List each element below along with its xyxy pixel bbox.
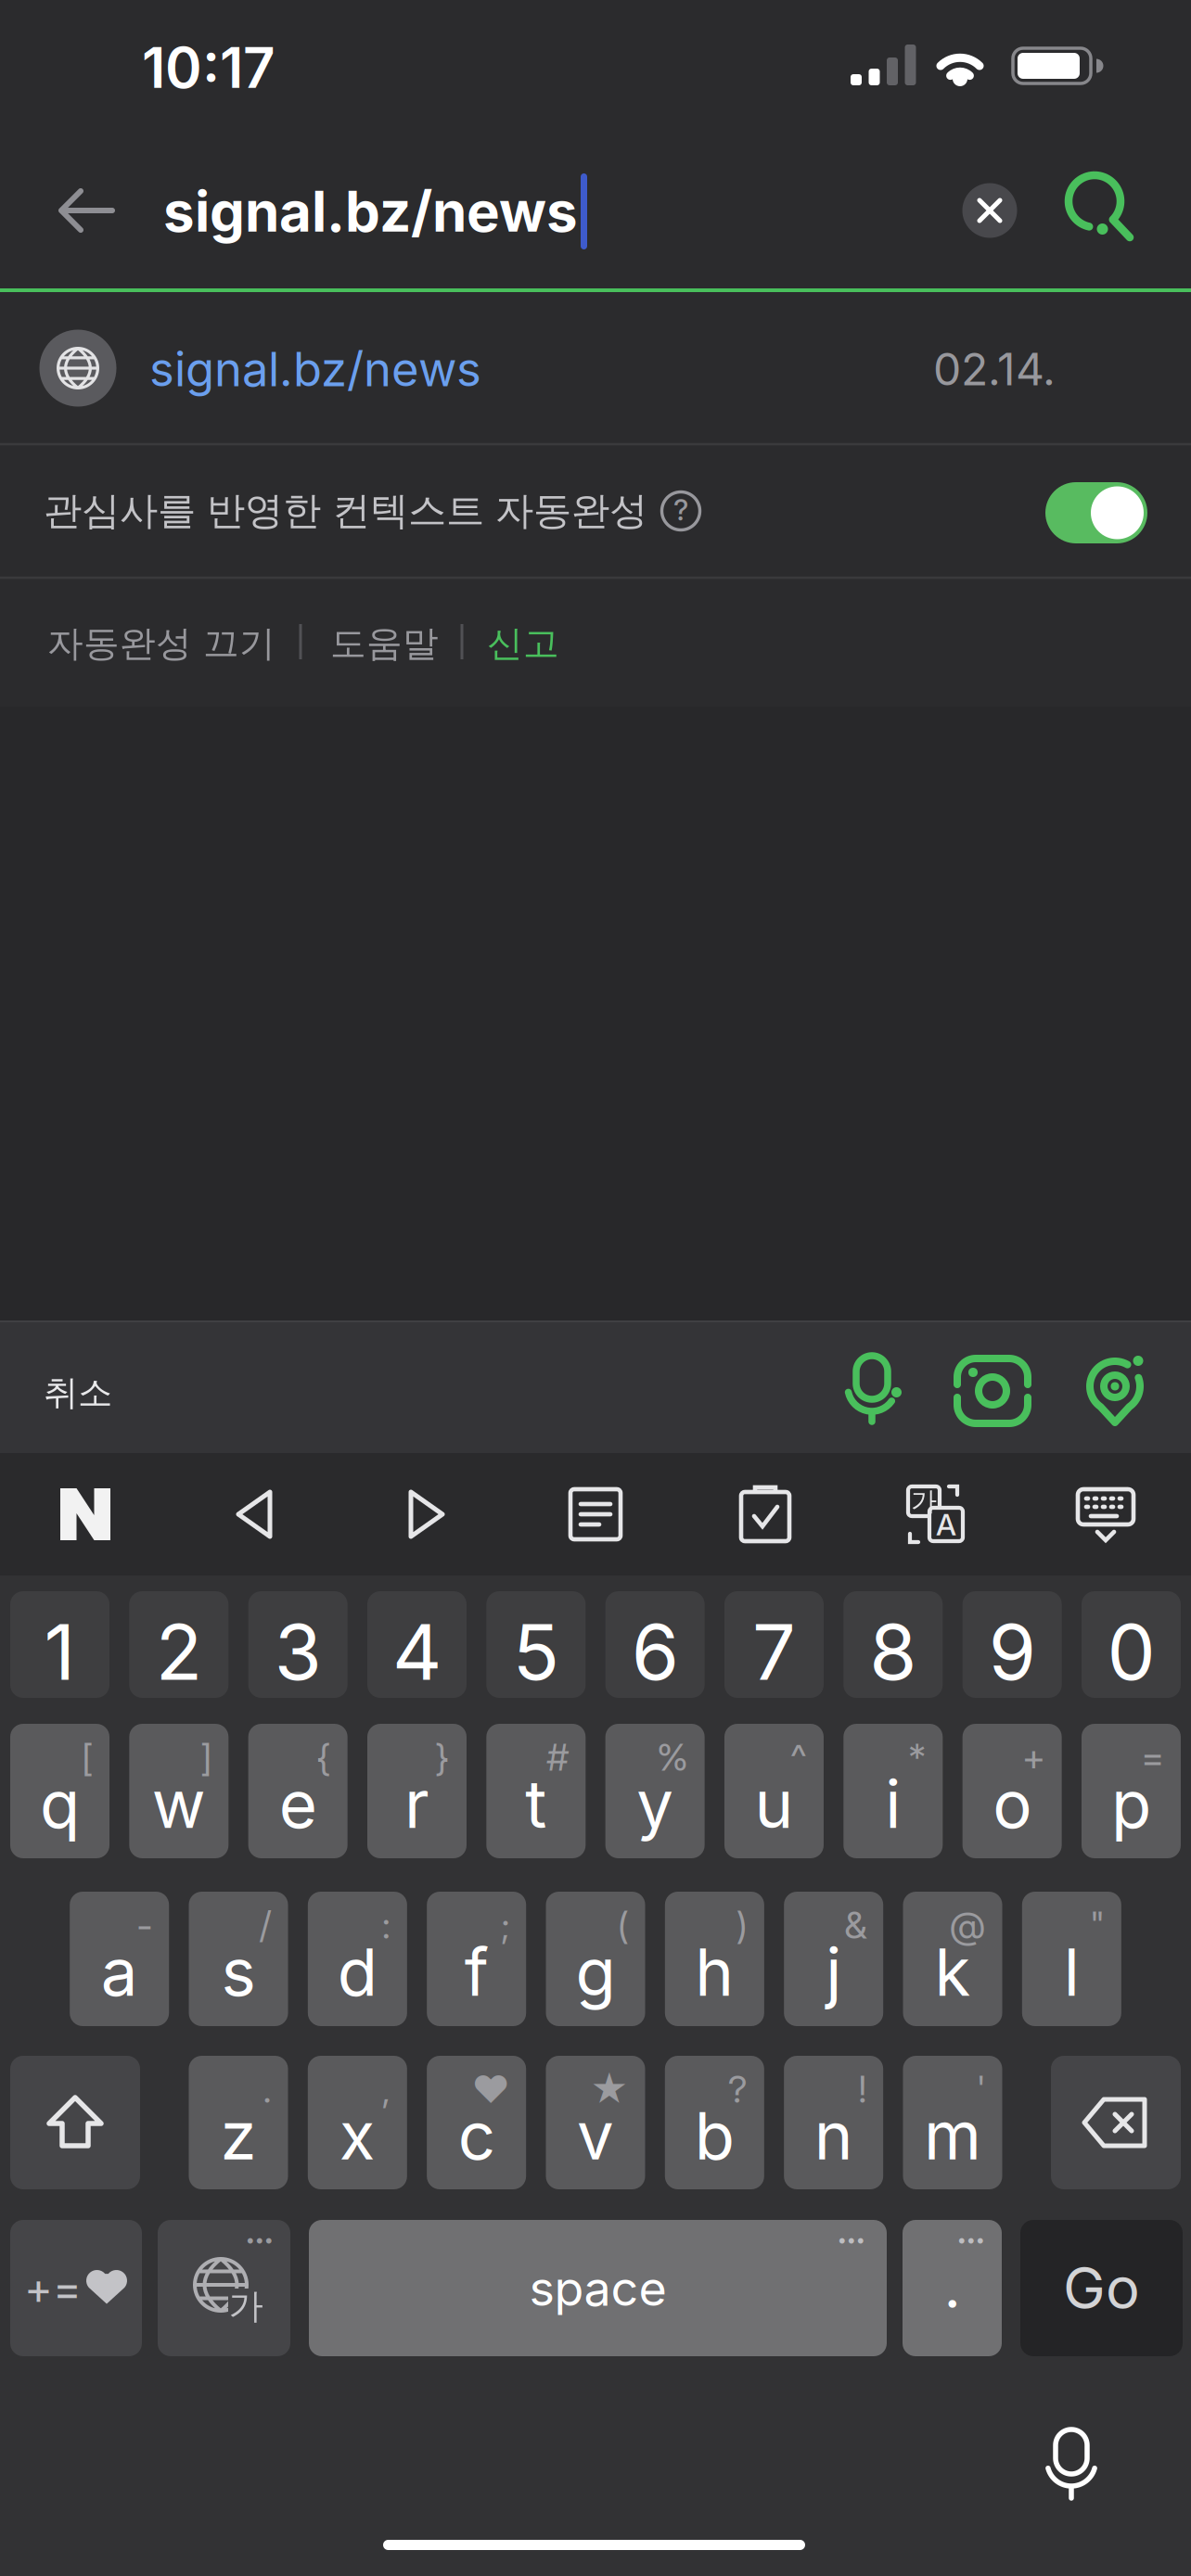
button[interactable]: r <box>367 1724 467 1858</box>
staticText: 관심사를 반영한 컨텍스트 자동완성 <box>44 487 647 535</box>
staticText: [ <box>82 1735 93 1780</box>
button[interactable]: z <box>189 2056 288 2189</box>
button[interactable]: 1 <box>10 1591 109 1698</box>
button[interactable]: space <box>309 2220 887 2356</box>
staticText: 8 <box>869 1606 917 1698</box>
button[interactable]: d <box>308 1892 407 2026</box>
button[interactable]: Documents <box>568 1486 623 1542</box>
button[interactable]: 자동완성 끄기 <box>0 0 1191 2576</box>
button[interactable]: 2 <box>129 1591 228 1698</box>
button[interactable]: k <box>903 1892 1002 2026</box>
button[interactable]: signal.bz/news <box>0 0 1191 2576</box>
button[interactable]: 8 <box>843 1591 943 1698</box>
button[interactable]: g <box>546 1892 645 2026</box>
button[interactable]: Translate <box>905 1484 967 1545</box>
button[interactable]: Symbols <box>10 2220 142 2356</box>
button[interactable]: Back <box>235 1488 275 1540</box>
button[interactable]: Naver <box>60 1488 110 1540</box>
staticText: k <box>935 1932 971 2011</box>
button[interactable]: Dictation <box>1030 2426 1113 2509</box>
button[interactable]: e <box>248 1724 348 1858</box>
button[interactable]: t <box>486 1724 586 1858</box>
button[interactable]: f <box>427 1892 526 2026</box>
button[interactable]: o <box>962 1724 1062 1858</box>
staticText: 7 <box>752 1606 796 1698</box>
button[interactable]: s <box>189 1892 288 2026</box>
button[interactable]: 컨텍스트 자동완성 켜짐 <box>1045 482 1147 543</box>
staticText: c <box>458 2096 495 2175</box>
staticText: z <box>220 2096 256 2175</box>
button[interactable]: 7 <box>724 1591 824 1698</box>
button[interactable]: Go <box>1020 2220 1183 2356</box>
staticText: 도움말 <box>330 621 439 666</box>
staticText: A <box>936 1506 956 1542</box>
button[interactable]: Clipboard <box>737 1485 793 1544</box>
staticText: : <box>382 1903 390 1947</box>
staticText: x <box>339 2096 375 2175</box>
button[interactable]: Search <box>1057 167 1140 250</box>
button[interactable]: p <box>1082 1724 1181 1858</box>
staticText: Go <box>1063 2254 1140 2322</box>
staticText: ♥ <box>472 2067 509 2112</box>
staticText: 02.14. <box>933 342 1056 396</box>
button[interactable]: Shift <box>10 2056 140 2189</box>
button[interactable]: y <box>605 1724 705 1858</box>
button[interactable]: 신고 <box>0 0 1191 2576</box>
button[interactable]: 5 <box>486 1591 586 1698</box>
staticText: 자동완성 끄기 <box>47 621 275 666</box>
button[interactable]: Forward <box>405 1488 446 1540</box>
button[interactable]: c <box>427 2056 526 2189</box>
staticText: 0 <box>1107 1606 1155 1698</box>
staticText: e <box>279 1764 317 1844</box>
button[interactable]: period <box>903 2220 1002 2356</box>
staticText: 2 <box>156 1606 202 1698</box>
button[interactable]: Location search <box>1073 1349 1157 1433</box>
button[interactable]: Dismiss keyboard <box>1075 1484 1136 1545</box>
staticText: h <box>695 1932 734 2011</box>
button[interactable]: u <box>724 1724 824 1858</box>
button[interactable]: 도움말 <box>0 0 1191 2576</box>
staticText: ] <box>201 1735 212 1780</box>
staticText: ! <box>858 2067 867 2112</box>
staticText: y <box>636 1764 674 1844</box>
button[interactable]: m <box>903 2056 1002 2189</box>
staticText: u <box>755 1764 794 1844</box>
staticText: ··· <box>246 2221 274 2260</box>
button[interactable]: Clear text <box>962 183 1017 238</box>
button[interactable]: Voice search <box>830 1349 914 1433</box>
button[interactable]: b <box>665 2056 764 2189</box>
button[interactable]: j <box>784 1892 883 2026</box>
button[interactable]: What is this <box>660 490 702 532</box>
button[interactable]: a <box>70 1892 169 2026</box>
staticText: . <box>263 2067 271 2112</box>
staticText: f <box>464 1932 489 2011</box>
staticText: = <box>1141 1735 1164 1780</box>
button[interactable]: Back <box>56 185 115 236</box>
button[interactable]: 0 <box>1082 1591 1181 1698</box>
staticText: i <box>885 1764 901 1844</box>
button[interactable]: 3 <box>248 1591 348 1698</box>
button[interactable]: Next keyboard <box>158 2220 290 2356</box>
staticText: & <box>844 1903 867 1947</box>
button[interactable]: 4 <box>367 1591 467 1698</box>
button[interactable]: 취소 <box>0 0 1191 2576</box>
button[interactable]: n <box>784 2056 883 2189</box>
button[interactable]: x <box>308 2056 407 2189</box>
staticText: 3 <box>274 1606 322 1698</box>
staticText: o <box>993 1764 1032 1844</box>
staticText: 4 <box>392 1606 442 1698</box>
button[interactable]: Delete <box>1051 2056 1181 2189</box>
staticText: 가 <box>229 2284 263 2328</box>
button[interactable]: i <box>843 1724 943 1858</box>
button[interactable]: 6 <box>605 1591 705 1698</box>
button[interactable]: l <box>1022 1892 1121 2026</box>
button[interactable]: v <box>546 2056 645 2189</box>
staticText: w <box>152 1764 206 1844</box>
button[interactable]: 9 <box>962 1591 1062 1698</box>
button[interactable]: q <box>10 1724 109 1858</box>
button[interactable]: Camera search <box>951 1349 1034 1433</box>
button[interactable]: w <box>129 1724 228 1858</box>
staticText: ( <box>617 1903 628 1947</box>
button[interactable]: h <box>665 1892 764 2026</box>
staticText: j <box>826 1932 841 2011</box>
